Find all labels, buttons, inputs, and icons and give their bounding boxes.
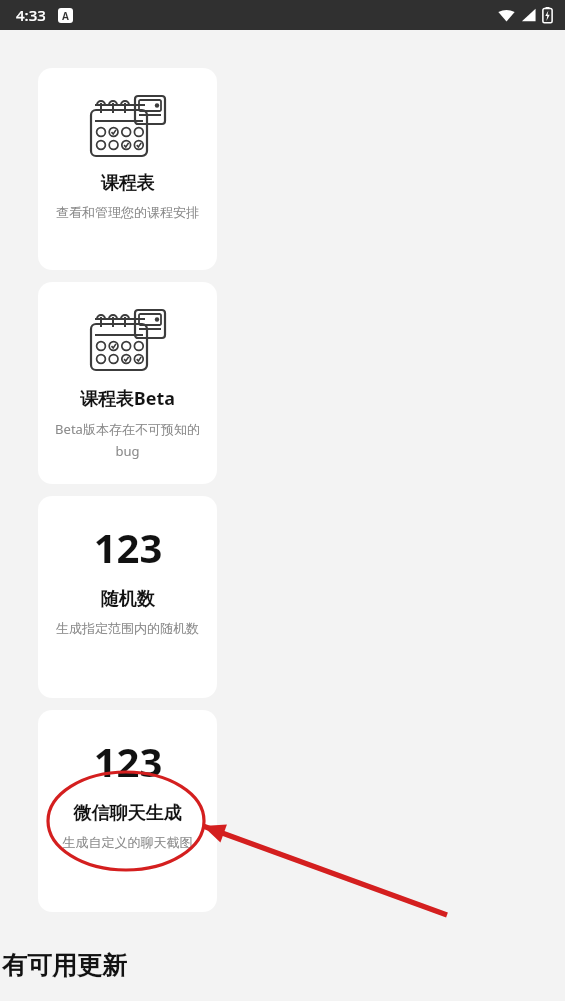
staticText: 有可用更新 <box>2 950 127 981</box>
staticText: 查看和管理您的课程安排 <box>52 204 203 220</box>
button[interactable]: 课程表Beta <box>38 282 217 484</box>
staticText: 生成指定范围内的随机数 <box>52 620 203 636</box>
staticText: 随机数 <box>38 588 217 611</box>
button[interactable]: 课程表 <box>38 68 217 270</box>
staticText: 4:33 <box>16 5 46 25</box>
staticText: A <box>62 9 69 23</box>
staticText: Beta版本存在不可预知的bug <box>52 420 203 460</box>
staticText: 生成自定义的聊天截图 <box>52 834 203 850</box>
staticText: 课程表Beta <box>38 386 217 411</box>
staticText: 123 <box>78 520 178 566</box>
staticText: 微信聊天生成 <box>38 802 217 825</box>
staticText: 123 <box>78 734 178 780</box>
button[interactable]: 123 <box>38 496 217 698</box>
staticText: 课程表 <box>38 172 217 195</box>
button[interactable]: 123 <box>38 710 217 912</box>
